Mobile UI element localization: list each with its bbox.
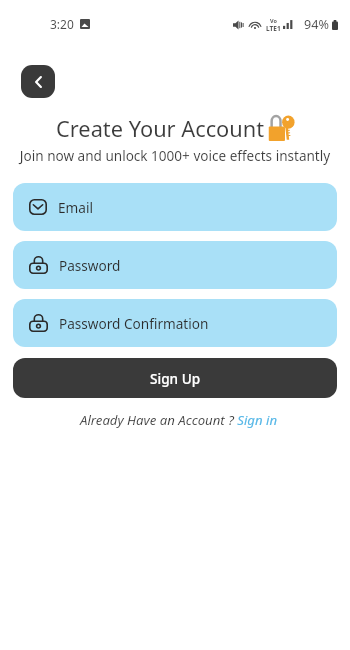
- staticText: Create Your Account: [56, 114, 265, 144]
- staticText: Sign Up: [150, 369, 201, 388]
- button[interactable]: Password: [13, 241, 337, 289]
- staticText: Vo: [270, 17, 277, 24]
- staticText: 94%: [304, 16, 329, 33]
- staticText: Password Confirmation: [59, 314, 209, 333]
- button[interactable]: Password Confirmation: [13, 299, 337, 347]
- staticText: 3:20: [50, 16, 74, 32]
- staticText: LTE1: [266, 24, 281, 33]
- staticText: Password: [59, 256, 121, 275]
- staticText: Join now and unlock 1000+ voice effects …: [0, 147, 350, 165]
- button[interactable]: Email: [13, 183, 337, 231]
- button[interactable]: Already Have an Account ? Sign in: [80, 411, 278, 429]
- staticText: Email: [58, 198, 93, 217]
- button[interactable]: Sign Up: [13, 358, 337, 398]
- button[interactable]: Back: [21, 65, 55, 98]
